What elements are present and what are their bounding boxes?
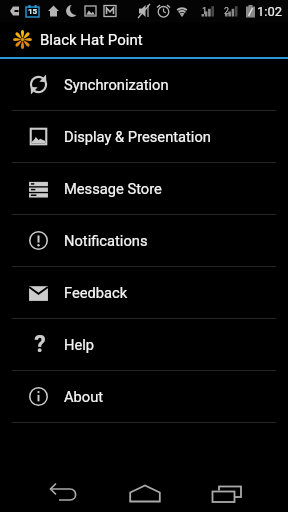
staticText: 1:02: [257, 4, 283, 19]
staticText: Synchronization: [64, 76, 169, 93]
staticText: ?: [34, 331, 46, 352]
button[interactable]: Feedback: [0, 267, 288, 318]
button[interactable]: ?: [0, 319, 288, 370]
button[interactable]: About: [0, 371, 288, 422]
staticText: 1: [202, 6, 208, 17]
staticText: Message Store: [64, 180, 162, 197]
button[interactable]: Notifications: [0, 215, 288, 266]
button[interactable]: Recent apps: [162, 462, 288, 512]
staticText: Black Hat Point: [40, 31, 143, 49]
staticText: 2: [224, 6, 230, 17]
staticText: About: [64, 388, 104, 405]
button[interactable]: Display & Presentation: [0, 111, 288, 162]
button[interactable]: Home: [128, 462, 162, 512]
button[interactable]: Synchronization: [0, 59, 288, 110]
button[interactable]: Message Store: [0, 163, 288, 214]
staticText: Help: [64, 336, 95, 353]
button[interactable]: Back: [0, 462, 128, 512]
staticText: 15: [28, 7, 38, 16]
staticText: Display & Presentation: [64, 128, 211, 145]
staticText: Notifications: [64, 232, 148, 249]
staticText: Feedback: [64, 284, 128, 301]
